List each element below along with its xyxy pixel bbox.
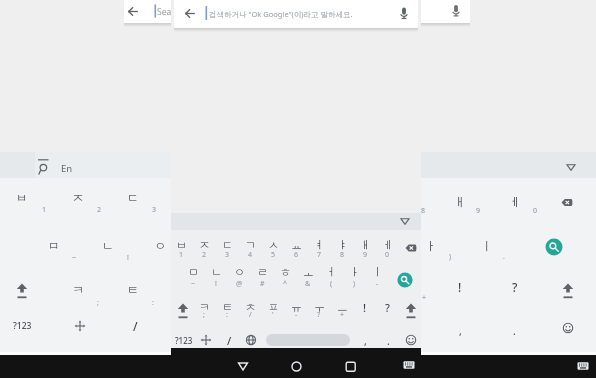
button[interactable]: ?123 <box>0 315 57 337</box>
button[interactable]: ㅂ <box>146 234 216 256</box>
button[interactable]: ㅡ <box>307 296 377 318</box>
button[interactable]: ? <box>352 296 422 318</box>
button[interactable]: ~ <box>39 247 109 269</box>
button[interactable]: . <box>353 330 423 352</box>
button[interactable]: ^ <box>250 273 320 295</box>
button[interactable]: 7 <box>284 244 354 266</box>
button[interactable]: ㅌ <box>98 278 168 300</box>
button[interactable]: ㅐ <box>330 234 400 256</box>
button[interactable]: ㅑ <box>307 234 377 256</box>
button[interactable]: / <box>194 329 264 351</box>
button[interactable]: ! <box>181 273 251 295</box>
button[interactable]: ?123 <box>149 329 219 351</box>
staticText: ㅂ <box>16 190 28 205</box>
button[interactable]: ㅋ <box>43 278 113 300</box>
button[interactable]: ㄱ <box>215 234 285 256</box>
button[interactable]: ; <box>169 304 239 326</box>
button[interactable]: / <box>215 304 285 326</box>
button[interactable]: ; <box>63 292 133 314</box>
button[interactable]: ㅜ <box>284 296 354 318</box>
button[interactable]: 4 <box>215 244 285 266</box>
button[interactable]: ㅠ <box>261 296 331 318</box>
button[interactable]: ㅁ <box>158 261 228 283</box>
staticText: ! <box>127 253 129 263</box>
button[interactable]: ㅊ <box>215 296 285 318</box>
button[interactable]: ㅔ <box>352 234 422 256</box>
button[interactable]: & <box>273 273 343 295</box>
button[interactable]: ㅐ <box>425 190 495 212</box>
button[interactable]: 0 <box>352 244 422 266</box>
button[interactable]: 9 <box>443 200 513 222</box>
button[interactable]: , <box>330 330 400 352</box>
button[interactable]: ( <box>296 273 366 295</box>
staticText: ! <box>363 300 367 315</box>
button[interactable]: . <box>469 246 539 268</box>
button[interactable]: 2 <box>64 199 134 221</box>
button[interactable]: ㅗ <box>273 261 343 283</box>
button[interactable]: ㅍ <box>238 296 308 318</box>
button[interactable]: 3 <box>192 244 262 266</box>
button[interactable]: ㅇ <box>204 261 274 283</box>
button[interactable]: ㅓ <box>296 261 366 283</box>
staticText: 0 <box>385 250 390 260</box>
button[interactable]: 0 <box>500 200 570 222</box>
button[interactable]: ㄷ <box>192 234 262 256</box>
button[interactable]: ! <box>330 296 400 318</box>
button[interactable]: ㅅ <box>238 234 308 256</box>
button[interactable]: ㄹ <box>227 261 297 283</box>
button[interactable]: 8 <box>307 244 377 266</box>
button[interactable]: 5 <box>238 244 308 266</box>
button[interactable]: ) <box>415 246 485 268</box>
button[interactable]: - <box>342 273 412 295</box>
button[interactable]: ㅣ <box>342 261 412 283</box>
button[interactable]: ㄴ <box>181 261 251 283</box>
button[interactable]: ! <box>93 247 163 269</box>
button[interactable]: 6 <box>261 244 331 266</box>
button[interactable]: ㅂ <box>0 186 57 208</box>
button[interactable]: ㅈ <box>43 186 113 208</box>
button[interactable]: ㅔ <box>480 190 550 212</box>
staticText: ㅏ <box>349 265 360 279</box>
button[interactable]: ㄴ <box>73 234 143 256</box>
button[interactable] <box>266 334 350 346</box>
button[interactable]: . <box>479 320 549 342</box>
button[interactable]: # <box>227 273 297 295</box>
button[interactable]: / <box>100 315 170 337</box>
button[interactable]: ㅋ <box>169 296 239 318</box>
button[interactable]: ? <box>480 276 550 298</box>
button[interactable]: + <box>307 304 377 326</box>
staticText: ㅊ <box>245 300 256 314</box>
button[interactable]: ~ <box>158 273 228 295</box>
button[interactable]: ' <box>238 304 308 326</box>
button[interactable]: 3 <box>119 199 189 221</box>
button[interactable]: ㅛ <box>261 234 331 256</box>
button[interactable]: + <box>389 287 459 309</box>
button[interactable]: ? <box>284 304 354 326</box>
button[interactable]: 1 <box>146 244 216 266</box>
button[interactable]: ㅏ <box>319 261 389 283</box>
button[interactable]: ㅏ <box>396 234 466 256</box>
button[interactable]: @ <box>204 273 274 295</box>
button[interactable]: ㅣ <box>452 234 522 256</box>
button[interactable]: ! <box>425 276 495 298</box>
button[interactable]: 8 <box>388 200 458 222</box>
button[interactable]: ㅈ <box>169 234 239 256</box>
button[interactable]: ㅎ <box>250 261 320 283</box>
button[interactable]: - <box>261 304 331 326</box>
button[interactable]: ) <box>319 273 389 295</box>
button[interactable]: 2 <box>169 244 239 266</box>
staticText: 8 <box>421 206 426 216</box>
button[interactable]: 9 <box>330 244 400 266</box>
button[interactable]: ㅌ <box>192 296 262 318</box>
button[interactable] <box>35 152 171 178</box>
button[interactable]: : <box>192 304 262 326</box>
button[interactable]: ㅇ <box>125 234 195 256</box>
button[interactable]: : <box>118 292 188 314</box>
button[interactable] <box>174 0 418 28</box>
button[interactable]: ㄷ <box>98 186 168 208</box>
button[interactable]: ㅕ <box>284 234 354 256</box>
button[interactable]: ㅁ <box>19 234 89 256</box>
button[interactable]: 1 <box>9 199 79 221</box>
button[interactable] <box>124 0 470 23</box>
button[interactable]: , <box>425 320 495 342</box>
